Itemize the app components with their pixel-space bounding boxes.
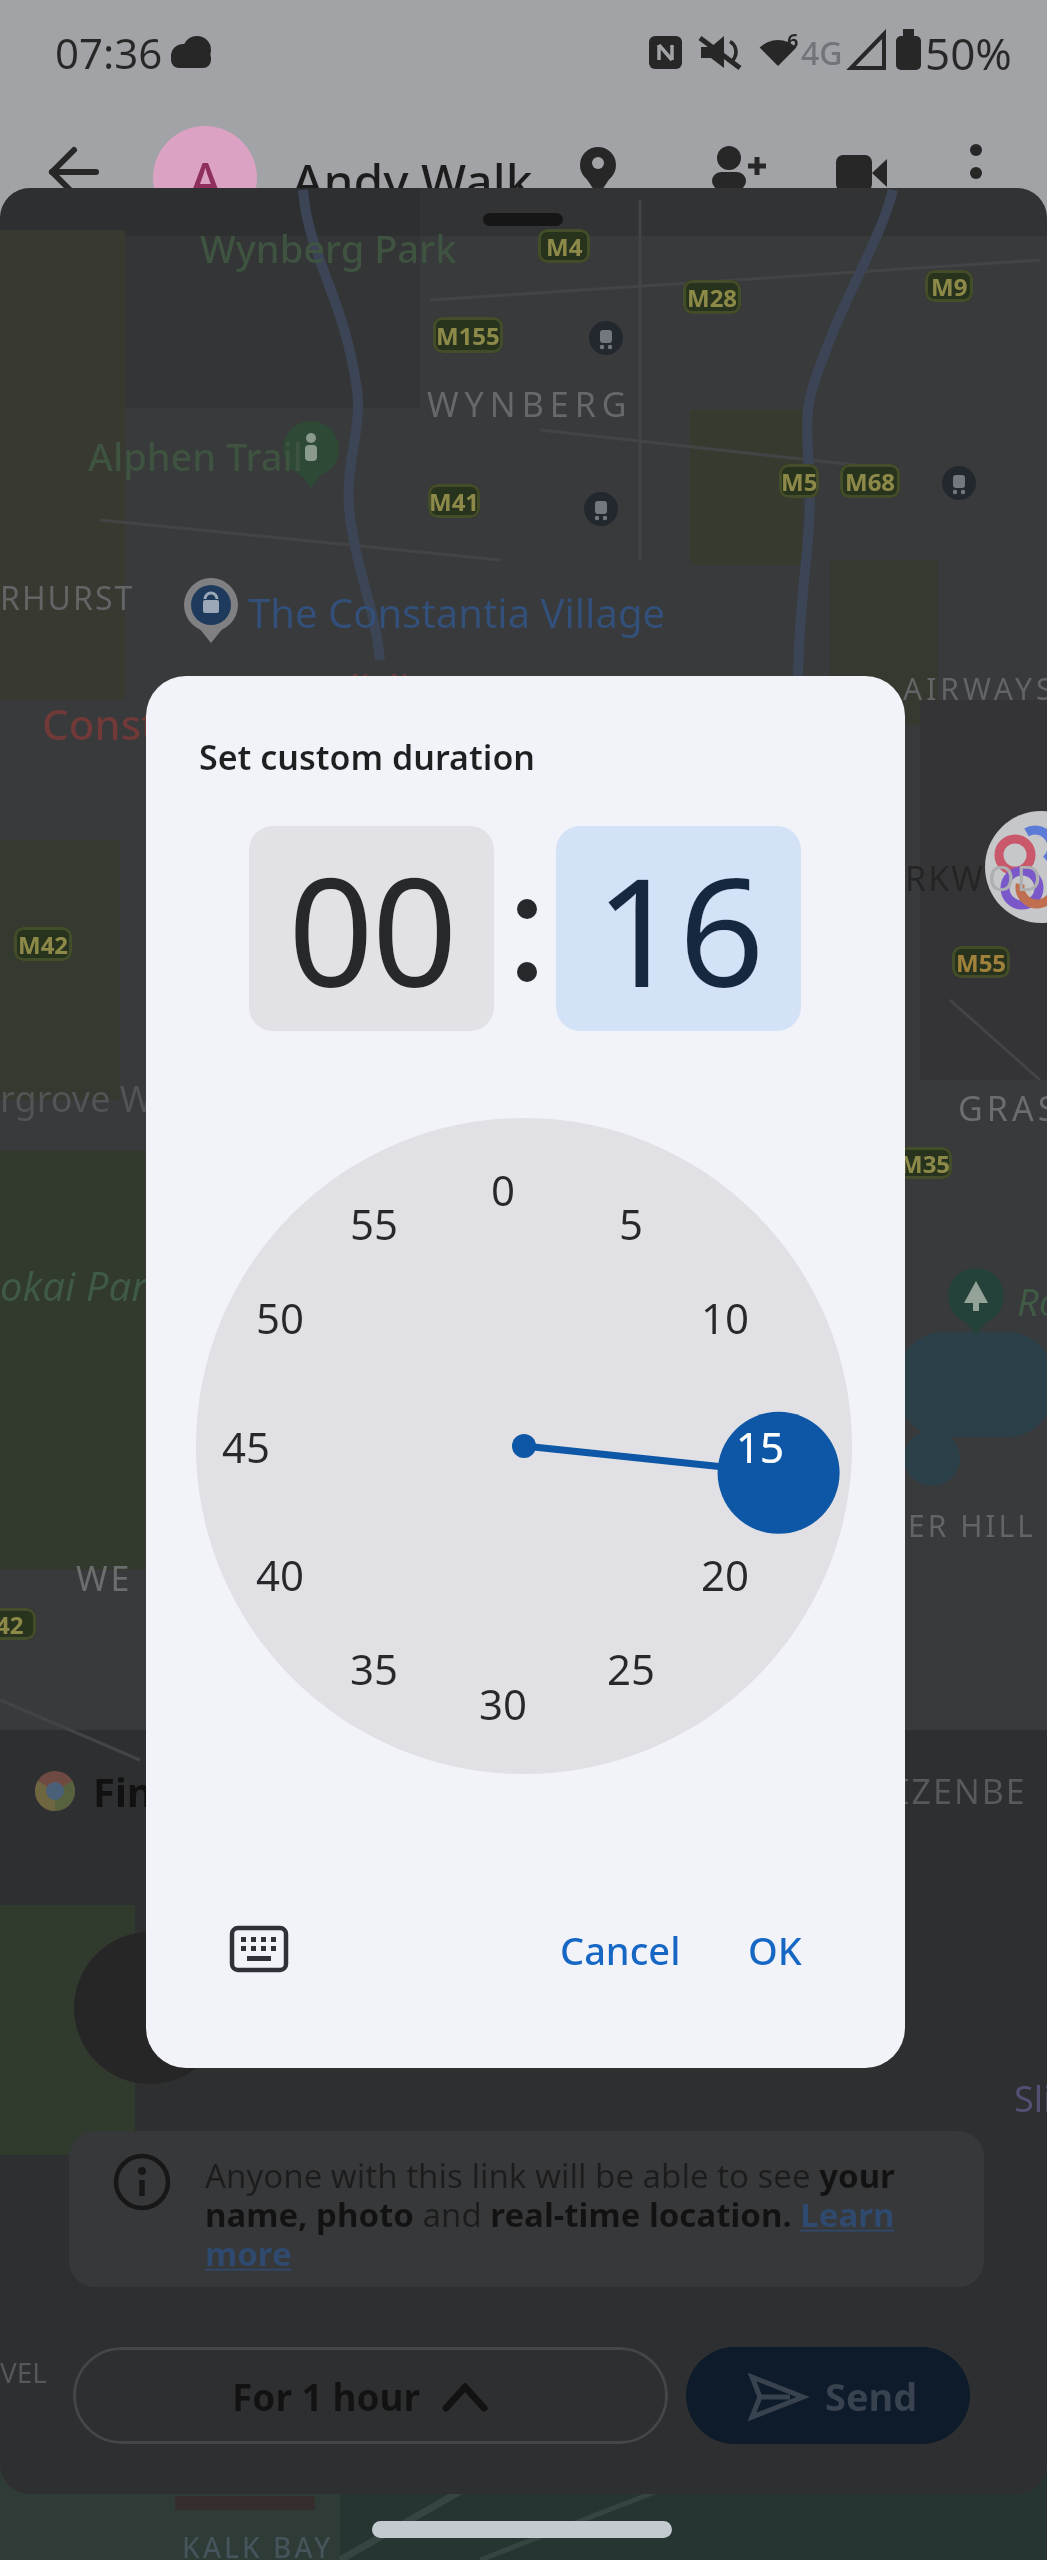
staticText: Medicli xyxy=(280,662,410,714)
staticText: 15 xyxy=(736,1418,785,1475)
staticText: 45 xyxy=(222,1418,271,1475)
staticText: 00 xyxy=(288,827,456,1031)
staticText: The Constantia Village xyxy=(248,585,666,639)
button[interactable]: 16 xyxy=(556,826,801,1031)
staticText: 40 xyxy=(256,1546,305,1603)
staticText: 30 xyxy=(479,1675,528,1732)
staticText: 42 xyxy=(0,1608,24,1640)
staticText: Andy Walk xyxy=(292,148,533,213)
button[interactable] xyxy=(73,2347,668,2444)
staticText: 20 xyxy=(701,1546,750,1603)
staticText: Const xyxy=(42,695,158,752)
staticText: M68 xyxy=(845,465,896,498)
staticText: 55 xyxy=(350,1195,399,1252)
staticText: M35 xyxy=(900,1147,951,1179)
staticText: 35 xyxy=(350,1640,399,1697)
button[interactable]: Cancel xyxy=(540,1900,700,2000)
staticText: M155 xyxy=(436,319,500,352)
staticText: Anyone with this link will be able to se… xyxy=(205,2153,895,2198)
staticText: For 1 hour xyxy=(232,2371,421,2421)
staticText: M28 xyxy=(687,281,738,314)
staticText: RHURST xyxy=(0,576,135,620)
staticText: rgrove Way xyxy=(0,1074,192,1123)
staticText: Wynberg Park xyxy=(200,222,457,274)
staticText: Cancel xyxy=(560,1924,681,1976)
staticText: M4 xyxy=(546,230,583,263)
staticText: Set custom duration xyxy=(199,734,536,780)
staticText: Ro xyxy=(1017,1275,1047,1327)
staticText: M55 xyxy=(956,946,1007,978)
button[interactable] xyxy=(686,2347,970,2444)
staticText: RKWOOD xyxy=(905,855,1047,901)
staticText: 5 xyxy=(619,1195,644,1252)
staticText: okai Park xyxy=(0,1258,167,1312)
staticText: Alphen Trail xyxy=(88,430,304,482)
staticText: 10 xyxy=(701,1289,750,1346)
staticText: IZENBE xyxy=(898,1768,1027,1814)
staticText: M9 xyxy=(931,270,968,302)
staticText: 50% xyxy=(925,23,1012,83)
staticText: Send xyxy=(825,2370,918,2422)
staticText: OK xyxy=(748,1924,802,1976)
staticText: Sli xyxy=(1014,2074,1047,2123)
staticText: ER HILL xyxy=(908,1505,1036,1546)
staticText: A xyxy=(189,146,222,214)
staticText: 4G xyxy=(801,31,843,75)
staticText: 50 xyxy=(256,1289,305,1346)
staticText: WE xyxy=(76,1555,133,1601)
staticText: M5 xyxy=(781,465,818,498)
button[interactable]: OK xyxy=(710,1900,840,2000)
staticText: M42 xyxy=(18,928,69,961)
button[interactable]: 00 xyxy=(249,826,494,1031)
staticText: KALK BAY xyxy=(182,2528,334,2560)
staticText: 0 xyxy=(491,1161,516,1218)
staticText: M41 xyxy=(429,485,480,518)
staticText: 25 xyxy=(607,1640,656,1697)
staticText: Fin xyxy=(93,1764,153,1818)
staticText: OD xyxy=(988,855,1044,901)
staticText: 16 xyxy=(595,827,763,1031)
staticText: VEL xyxy=(0,2353,48,2391)
staticText: WYNBERG xyxy=(427,381,633,427)
staticText: more xyxy=(205,2231,292,2276)
staticText: AIRWAYS xyxy=(903,668,1047,709)
staticText: 6 xyxy=(787,27,799,54)
staticText: name, photo and real-time location. Lear… xyxy=(205,2192,895,2237)
staticText: 07:36 xyxy=(55,24,163,81)
staticText: GRAS xyxy=(958,1085,1047,1131)
